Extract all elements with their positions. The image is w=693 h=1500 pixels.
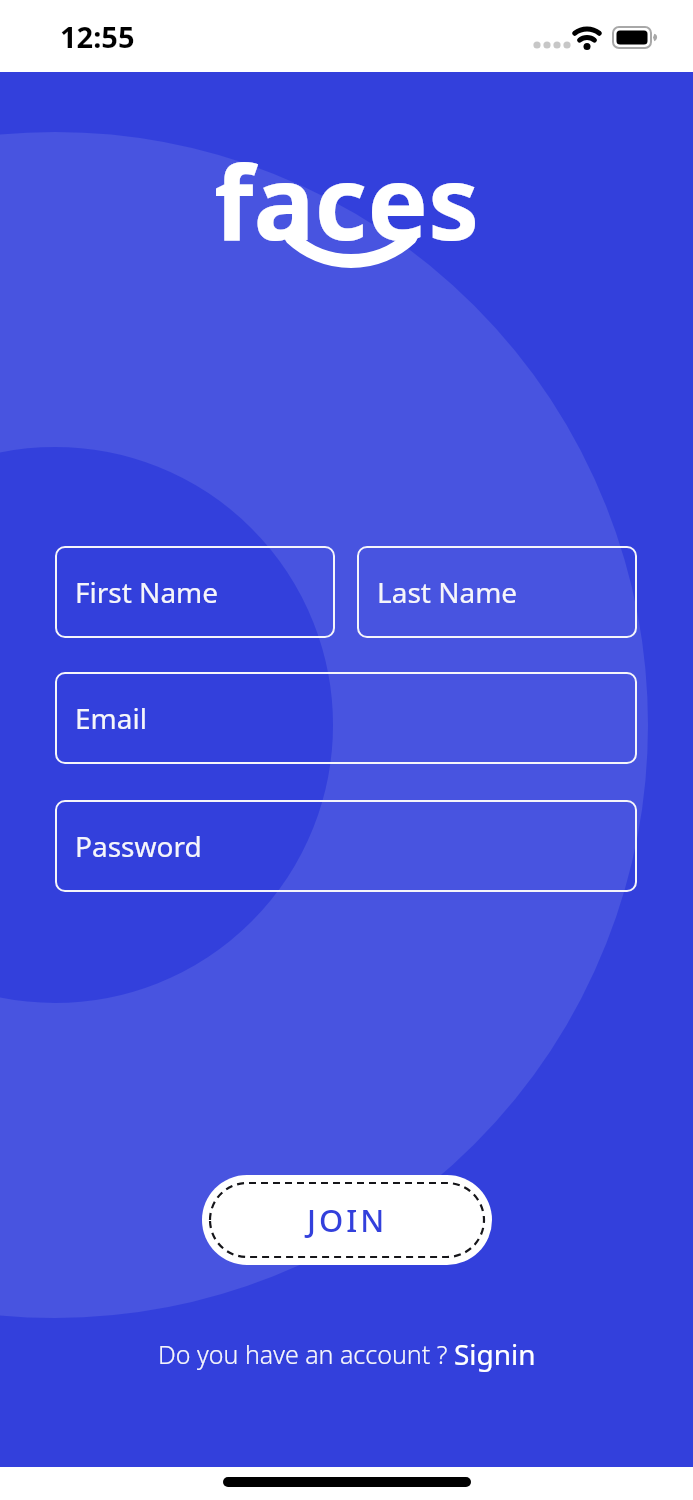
staticText: Password [75, 827, 202, 865]
button[interactable]: Email [55, 672, 637, 764]
staticText: First Name [75, 573, 219, 611]
staticText: 12:55 [60, 17, 135, 56]
button[interactable]: Last Name [357, 546, 637, 638]
button[interactable]: JOIN [202, 1175, 492, 1265]
staticText: faces [214, 131, 480, 270]
staticText: Email [75, 699, 147, 737]
button[interactable]: Password [55, 800, 637, 892]
staticText: Last Name [377, 573, 518, 611]
staticText: JOIN [307, 1199, 388, 1241]
button[interactable]: First Name [55, 546, 335, 638]
button[interactable]: Signin [454, 1335, 536, 1373]
staticText: Do you have an account ? [158, 1337, 454, 1371]
